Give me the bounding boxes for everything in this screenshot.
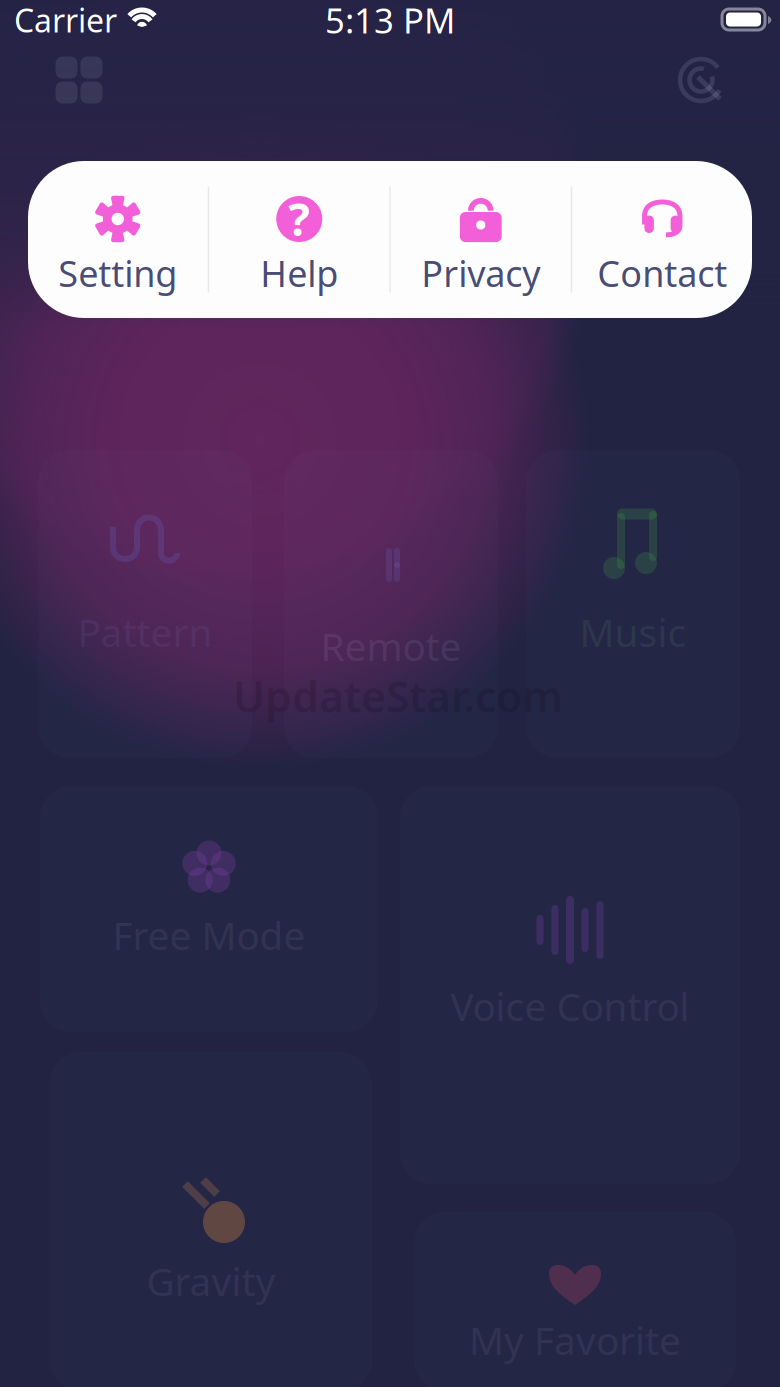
staticText: ?	[288, 188, 310, 248]
button[interactable]: Privacy	[391, 161, 571, 318]
staticText: Remote	[320, 620, 461, 672]
staticText: 5:13 PM	[325, 0, 455, 43]
staticText: Voice Control	[450, 980, 689, 1032]
staticText: Privacy	[421, 249, 540, 297]
button[interactable]: Contact	[572, 161, 752, 318]
staticText: Gravity	[146, 1255, 275, 1307]
staticText: Setting	[58, 249, 177, 297]
button[interactable]: Menu	[44, 45, 114, 115]
button[interactable]: ?	[209, 161, 389, 318]
staticText: Free Mode	[112, 909, 305, 961]
staticText: UpdateStar.com	[233, 668, 563, 724]
staticText: Contact	[597, 249, 727, 297]
staticText: My Favorite	[469, 1314, 681, 1366]
button[interactable]: Setting	[28, 161, 208, 318]
button[interactable]: Connect	[666, 45, 736, 115]
staticText: Pattern	[77, 606, 212, 658]
staticText: Help	[260, 249, 338, 297]
staticText: Carrier	[14, 0, 117, 41]
staticText: Music	[579, 606, 686, 658]
